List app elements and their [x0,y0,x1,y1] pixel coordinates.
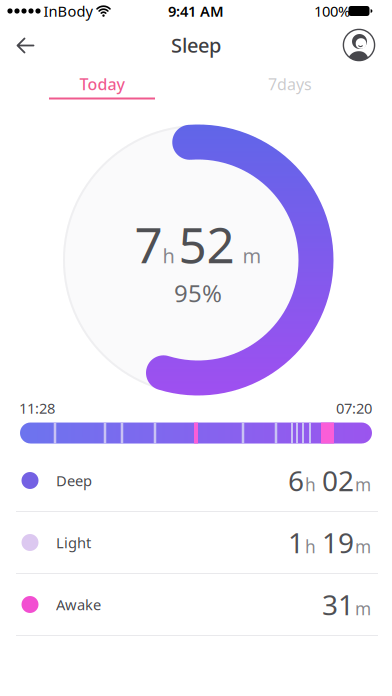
staticText: h [162,242,174,269]
staticText: Light [56,533,91,552]
staticText: 6 [288,462,304,499]
staticText: 31 [322,586,354,623]
staticText: 7 [134,211,162,277]
staticText: m [242,242,261,269]
staticText: Deep [56,471,92,490]
button[interactable]: 7days [237,65,343,103]
staticText: InBody [43,1,92,21]
staticText: Today [79,73,124,95]
staticText: h [305,535,316,558]
button[interactable] [342,28,376,62]
staticText: m [355,535,371,558]
staticText: 100% [314,1,350,21]
staticText: m [355,597,371,620]
staticText: 02 [322,462,354,499]
button[interactable]: Today [49,65,155,103]
staticText: h [305,473,316,496]
staticText: 19 [322,524,354,561]
staticText: 9:41 AM [168,1,224,21]
staticText: 7days [268,73,312,95]
staticText: Awake [56,595,101,614]
staticText: 11:28 [19,398,55,418]
staticText: m [355,473,371,496]
staticText: 1 [288,524,304,561]
staticText: 52 [178,211,234,277]
button[interactable] [15,34,37,56]
staticText: 95% [174,277,222,309]
staticText: 07:20 [336,398,372,418]
staticText: Sleep [171,32,221,58]
